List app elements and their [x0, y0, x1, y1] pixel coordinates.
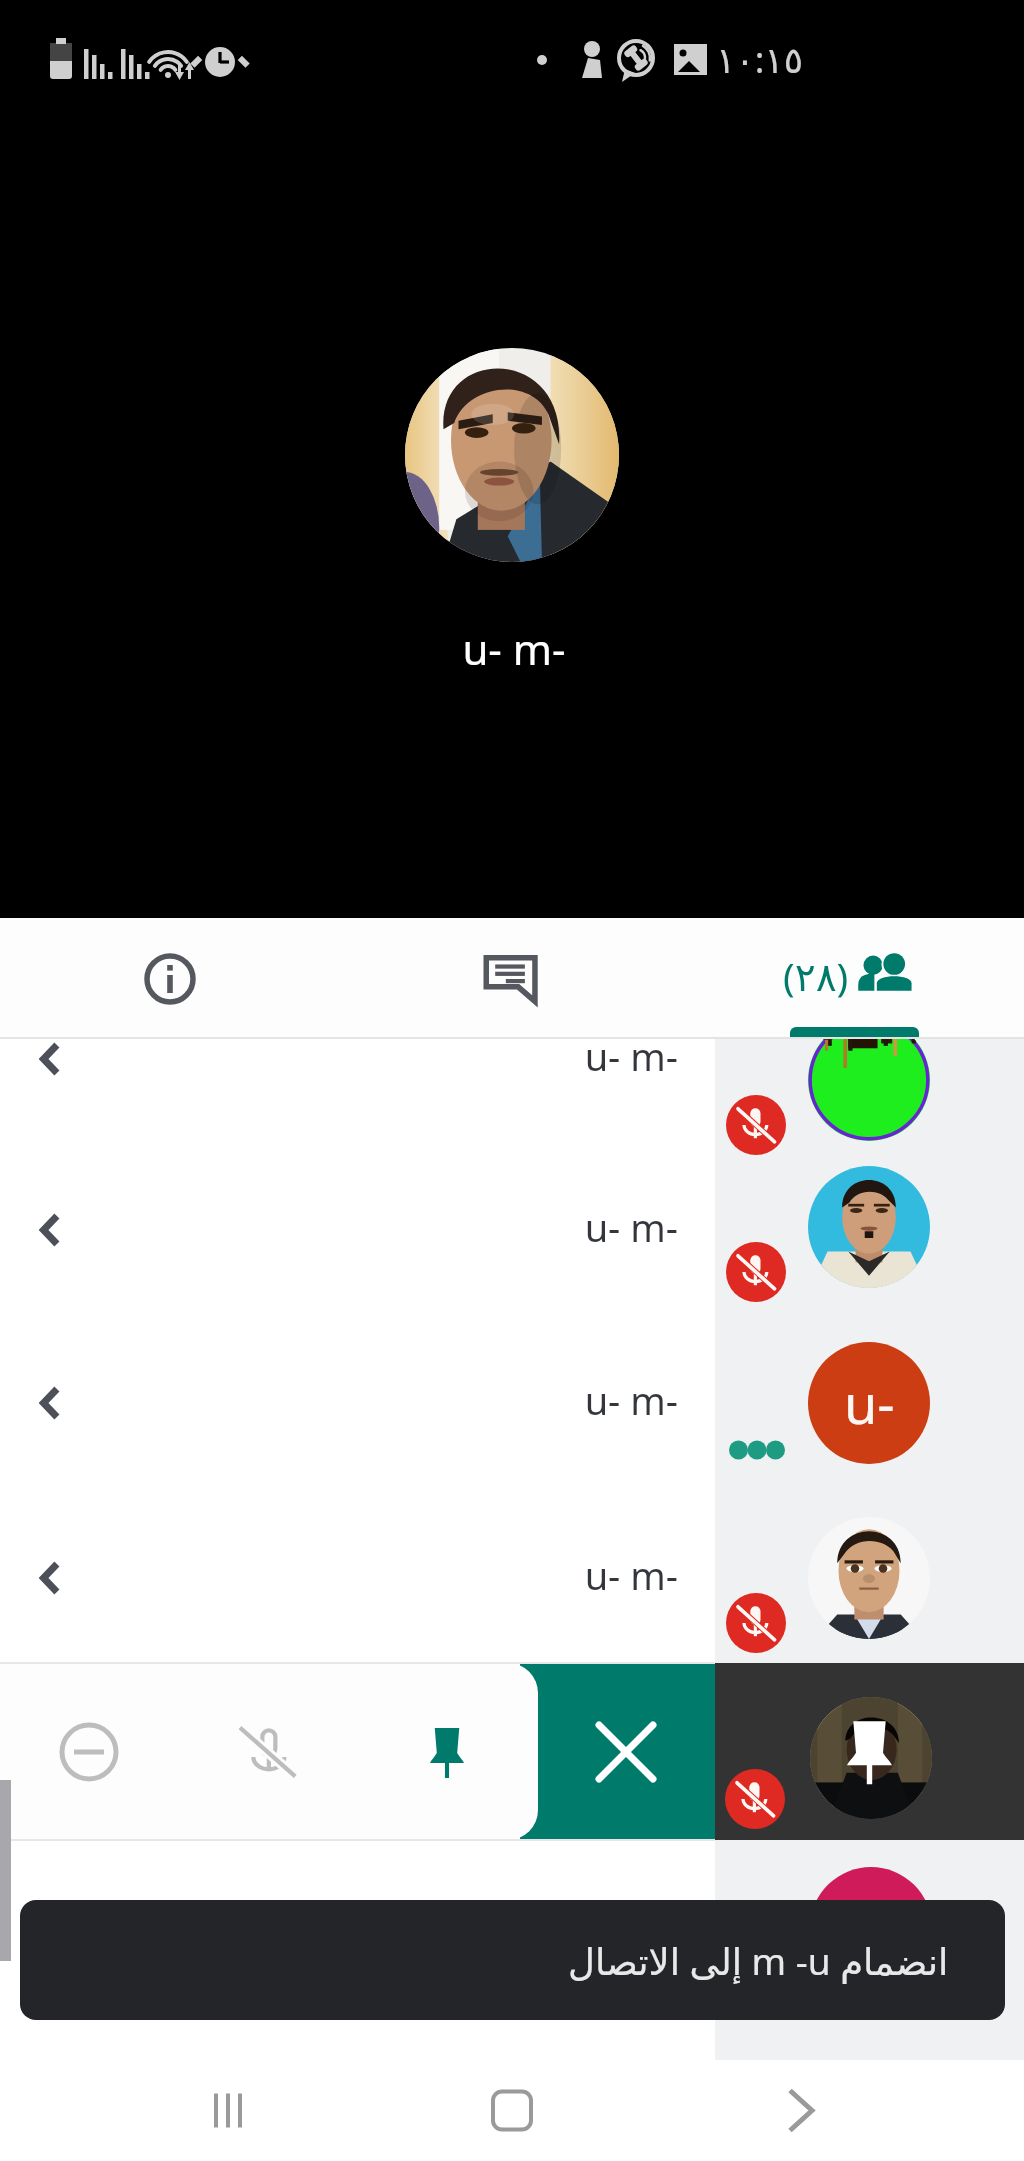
staticText: u- m- — [2, 1374, 678, 1426]
button[interactable]: End call — [520, 1663, 715, 1840]
other: Expand — [40, 1388, 58, 1418]
staticText: u- m- — [2, 620, 1024, 677]
staticText: u- m- — [2, 1549, 678, 1601]
button[interactable]: Remove participant — [0, 1663, 178, 1840]
other: Expand — [40, 1215, 58, 1245]
button[interactable] — [0, 1320, 715, 1486]
other: Muted — [725, 1769, 785, 1829]
button[interactable] — [0, 1039, 715, 1205]
button[interactable]: Muted — [726, 1242, 786, 1302]
button[interactable]: Chat — [427, 918, 597, 1039]
staticText: u- m- — [2, 1030, 678, 1082]
other: Expand — [40, 1044, 58, 1074]
staticText: ١٠:١٥ — [716, 35, 803, 84]
button[interactable]: Muted — [726, 1095, 786, 1155]
staticText: u- m- — [2, 1201, 678, 1253]
button[interactable]: Recent apps — [150, 2060, 310, 2161]
button[interactable]: (٢٨) — [748, 918, 953, 1039]
staticText: u- — [844, 1366, 895, 1440]
button[interactable]: Muted — [726, 1593, 786, 1653]
button[interactable]: u- — [808, 1342, 930, 1464]
staticText: (٢٨) — [783, 949, 849, 1002]
button[interactable] — [0, 1495, 715, 1661]
button[interactable]: إلى الاتصال m -u انضمام — [20, 1900, 1005, 2020]
button[interactable]: Call info — [85, 918, 255, 1039]
staticText: إلى الاتصال m -u انضمام — [568, 1935, 949, 1985]
other: Expand — [40, 1563, 58, 1593]
button[interactable]: Back — [720, 2060, 880, 2161]
button[interactable]: Home — [432, 2060, 592, 2161]
button[interactable] — [0, 1147, 715, 1313]
button[interactable]: Pin participant — [358, 1663, 536, 1840]
button[interactable]: Mute participant — [178, 1663, 356, 1840]
